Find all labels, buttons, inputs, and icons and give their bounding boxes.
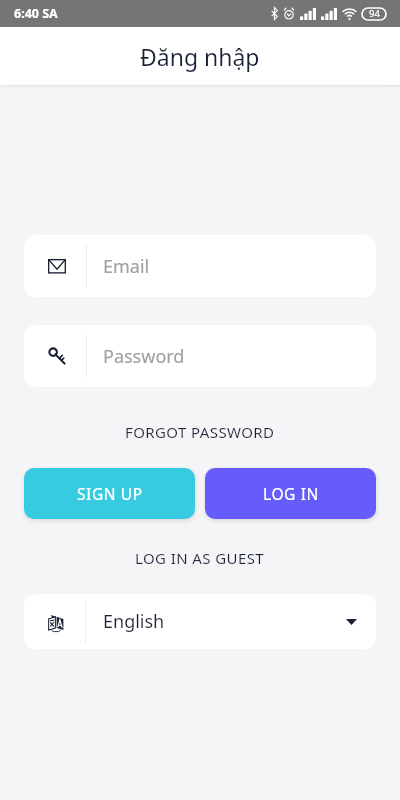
button[interactable]: SIGN UP	[24, 468, 195, 519]
staticText: FORGOT PASSWORD	[125, 422, 275, 442]
staticText: LOG IN AS GUEST	[135, 548, 265, 568]
staticText: LOG IN	[263, 483, 319, 504]
staticText: Đăng nhập	[140, 41, 260, 72]
button[interactable]: Email	[24, 235, 376, 297]
staticText: SIGN UP	[77, 483, 143, 504]
button[interactable]: LOG IN AS GUEST	[0, 544, 400, 572]
button[interactable]: English	[24, 594, 376, 649]
staticText: Email	[103, 254, 150, 279]
staticText: 6:40 SA	[14, 5, 58, 22]
button[interactable]: FORGOT PASSWORD	[0, 418, 400, 446]
staticText: Password	[103, 344, 185, 369]
button[interactable]: LOG IN	[205, 468, 376, 519]
staticText: English	[103, 609, 165, 634]
other: Select language	[346, 619, 357, 625]
button[interactable]: Password	[24, 325, 376, 387]
staticText: 94	[369, 7, 380, 20]
